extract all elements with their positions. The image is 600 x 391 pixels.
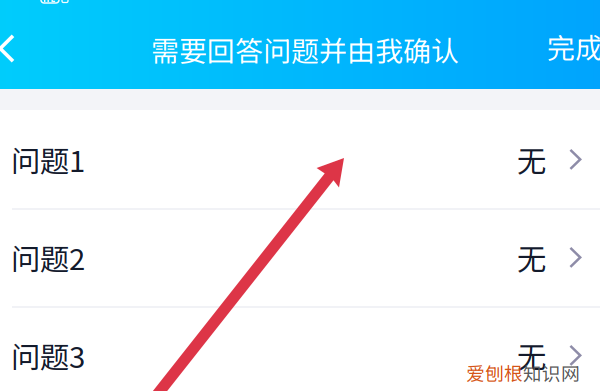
staticText: 问题1: [11, 138, 85, 180]
staticText: 无: [517, 334, 546, 376]
staticText: 爱刨根: [466, 359, 523, 386]
button[interactable]: 问题3: [0, 306, 600, 391]
button[interactable]: 完成: [547, 26, 600, 66]
staticText: 完成: [547, 26, 600, 66]
staticText: 知识网: [523, 359, 580, 386]
button[interactable]: 问题1: [0, 110, 600, 208]
staticText: 需要回答问题并由我确认: [151, 29, 459, 69]
staticText: 问题3: [11, 334, 85, 376]
button[interactable]: Back: [0, 25, 40, 73]
button[interactable]: 问题2: [0, 208, 600, 306]
staticText: 问题2: [11, 236, 85, 278]
staticText: 无: [517, 236, 546, 278]
staticText: 无: [517, 138, 546, 180]
